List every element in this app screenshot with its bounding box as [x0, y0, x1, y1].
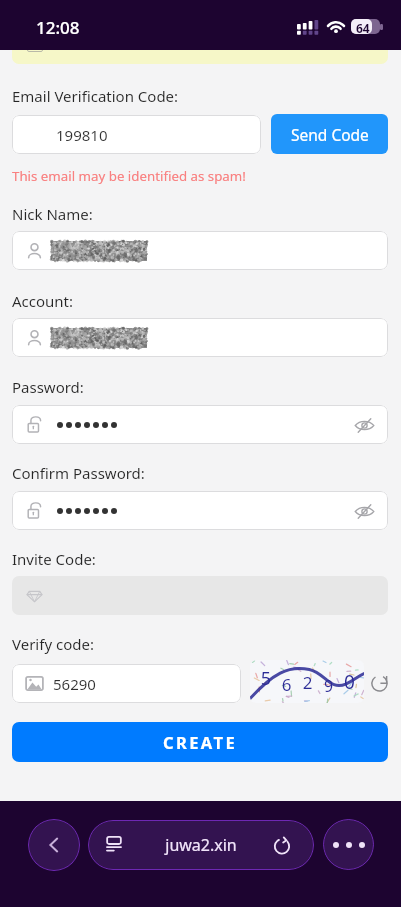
button[interactable]: CREATE	[12, 722, 388, 762]
button[interactable]: 56290	[12, 664, 241, 703]
button[interactable]: Show password	[352, 499, 376, 523]
button[interactable]: Refresh captcha	[368, 671, 391, 694]
staticText: juwa2.xin	[165, 834, 237, 856]
staticText: Password:	[12, 377, 84, 397]
staticText: Account:	[12, 291, 74, 311]
staticText: 12:08	[36, 16, 80, 39]
staticText: Invite Code:	[12, 549, 96, 569]
button[interactable]	[12, 491, 388, 530]
staticText: 199810	[56, 125, 108, 145]
button[interactable]: juwa2.xin	[88, 820, 314, 870]
button[interactable]	[12, 405, 388, 444]
button[interactable]: Back	[28, 819, 80, 871]
button[interactable]	[12, 318, 388, 357]
staticText: 56290	[53, 674, 96, 694]
staticText: 5	[256, 666, 276, 691]
staticText: CREATE	[163, 731, 238, 753]
button[interactable]: Show password	[352, 413, 376, 437]
staticText: 0	[339, 669, 360, 695]
button[interactable]: 199810	[12, 115, 261, 154]
staticText: This email may be identified as spam!	[12, 167, 246, 185]
button[interactable]	[12, 231, 388, 270]
staticText: Confirm Password:	[12, 463, 145, 483]
staticText: 6	[276, 673, 297, 696]
staticText: Email Verification Code:	[12, 86, 179, 106]
button[interactable]: Send Code	[271, 114, 388, 154]
staticText: Verify code:	[12, 634, 94, 654]
staticText: 64	[356, 20, 370, 35]
staticText: Send Code	[291, 124, 369, 145]
button[interactable]: Reload	[271, 834, 293, 856]
staticText: 2	[297, 671, 318, 694]
staticText: Nick Name:	[12, 204, 93, 224]
staticText: 9	[318, 675, 339, 697]
button[interactable]: Captcha image	[250, 660, 364, 703]
button[interactable]: More options	[323, 819, 374, 870]
